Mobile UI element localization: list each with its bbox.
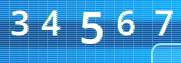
staticText: 5 — [79, 0, 105, 57]
staticText: 7 — [154, 0, 174, 45]
staticText: 4 — [41, 0, 61, 45]
staticText: 3 — [10, 0, 30, 45]
button[interactable]: Selected value — [152, 44, 181, 63]
staticText: 6 — [116, 0, 136, 45]
